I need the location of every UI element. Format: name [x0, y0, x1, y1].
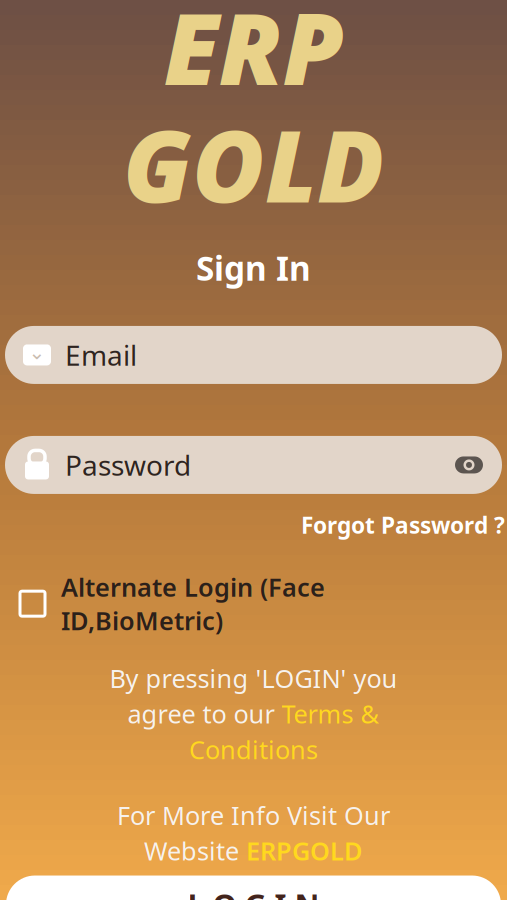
staticText: agree to our [127, 697, 281, 731]
staticText: ERP [163, 0, 343, 113]
staticText: Alternate Login (Face ID,BioMetric) [61, 570, 325, 637]
staticText: Conditions [189, 733, 318, 766]
staticText: L O G I N [187, 884, 319, 900]
staticText: Website [144, 834, 246, 867]
staticText: Terms & [281, 697, 379, 731]
button[interactable]: Conditions [189, 733, 318, 766]
staticText: Password [65, 446, 191, 483]
button[interactable]: Forgot Password ? [301, 506, 505, 544]
staticText: Sign In [196, 246, 311, 290]
staticText: GOLD [123, 99, 384, 230]
staticText: For More Info Visit Our [117, 798, 390, 832]
button[interactable]: ERPGOLD [246, 834, 363, 867]
button[interactable]: L O G I N [6, 875, 501, 900]
button[interactable]: Show password [454, 454, 484, 476]
staticText: Email [65, 336, 137, 373]
staticText: ERPGOLD [246, 834, 363, 867]
button[interactable]: Alternate Login (Face ID,BioMetric) [0, 566, 507, 641]
staticText: Forgot Password ? [301, 510, 505, 540]
button[interactable]: Terms & [281, 697, 379, 731]
staticText: By pressing 'LOGIN' you [109, 661, 397, 695]
staticText: ⌄ [28, 341, 45, 364]
